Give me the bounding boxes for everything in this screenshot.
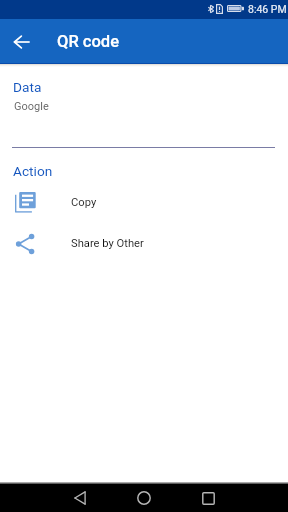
button[interactable]: Navigate up — [7, 27, 37, 57]
staticText: Copy — [71, 196, 97, 209]
button[interactable]: Home — [126, 482, 162, 512]
button[interactable]: Copy — [0, 182, 288, 222]
staticText: Data — [13, 79, 42, 95]
staticText: 8:46 PM — [248, 3, 287, 15]
staticText: Google — [14, 100, 49, 113]
staticText: QR code — [57, 32, 120, 51]
button[interactable]: Back — [62, 482, 98, 512]
button[interactable]: Share by Other — [0, 223, 288, 263]
button[interactable]: Recent apps — [190, 482, 226, 512]
staticText: Action — [13, 163, 53, 179]
staticText: Share by Other — [71, 237, 144, 250]
